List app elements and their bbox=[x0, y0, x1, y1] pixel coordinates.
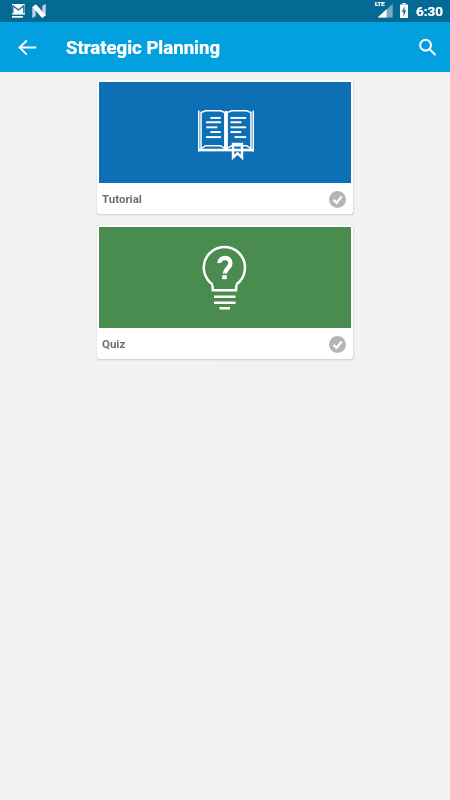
staticText: Tutorial bbox=[102, 192, 142, 205]
staticText: 6:30 bbox=[416, 3, 444, 19]
staticText: Quiz bbox=[102, 337, 126, 350]
staticText: LTE bbox=[375, 0, 385, 7]
staticText: Strategic Planning bbox=[66, 37, 221, 59]
button[interactable]: Tutorial bbox=[97, 80, 353, 214]
button[interactable]: Search bbox=[410, 30, 444, 64]
button[interactable]: Quiz bbox=[97, 225, 353, 359]
button[interactable]: Back bbox=[10, 30, 44, 64]
